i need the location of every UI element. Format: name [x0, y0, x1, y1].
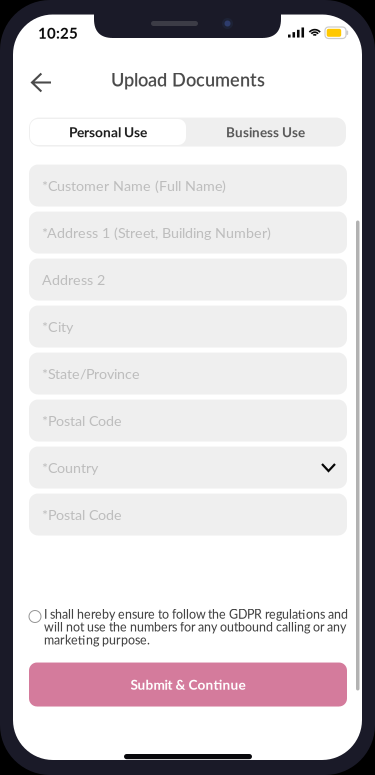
- staticText: *Postal Code: [42, 506, 122, 523]
- staticText: 10:25: [38, 24, 78, 42]
- button[interactable]: Business Use: [186, 119, 345, 145]
- button[interactable]: *Postal Code: [29, 493, 347, 535]
- staticText: *Customer Name (Full Name): [42, 177, 226, 194]
- button[interactable]: I shall hereby ensure to follow the GDPR…: [29, 606, 351, 652]
- button[interactable]: *State/Province: [29, 352, 347, 394]
- button[interactable]: Submit & Continue: [29, 662, 347, 706]
- button[interactable]: Upload Documents: [88, 67, 288, 91]
- staticText: *City: [42, 318, 73, 335]
- button[interactable]: *Country: [29, 446, 347, 488]
- staticText: *Country: [42, 459, 98, 476]
- staticText: Address 2: [42, 271, 105, 288]
- staticText: Submit & Continue: [130, 676, 245, 693]
- button[interactable]: Back: [22, 63, 61, 101]
- staticText: *Postal Code: [42, 412, 122, 429]
- staticText: *Address 1 (Street, Building Number): [42, 224, 271, 241]
- staticText: Personal Use: [69, 124, 147, 140]
- button[interactable]: Address 2: [29, 258, 347, 300]
- staticText: Business Use: [226, 124, 305, 140]
- staticText: Upload Documents: [111, 69, 265, 90]
- staticText: *State/Province: [42, 365, 140, 382]
- button[interactable]: *Customer Name (Full Name): [29, 164, 347, 206]
- button[interactable]: *Postal Code: [29, 399, 347, 441]
- button[interactable]: Personal Use: [30, 119, 186, 145]
- button[interactable]: *Address 1 (Street, Building Number): [29, 211, 347, 253]
- button[interactable]: *City: [29, 305, 347, 347]
- staticText: I shall hereby ensure to follow the GDPR…: [44, 606, 348, 647]
